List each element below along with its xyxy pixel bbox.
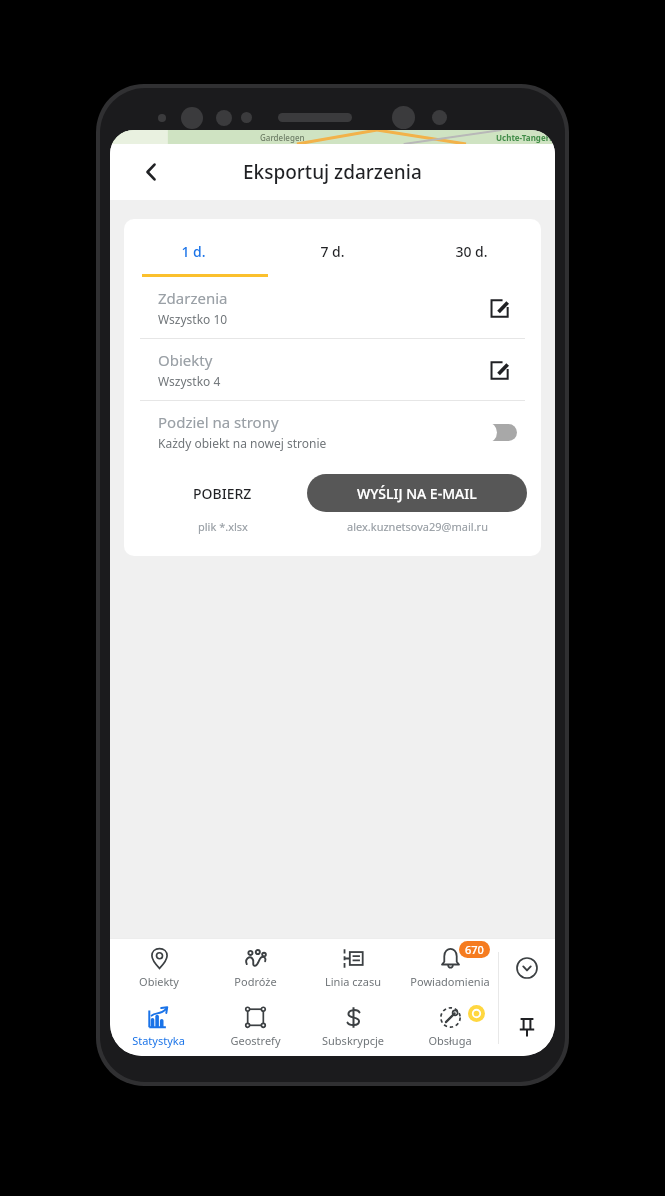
button[interactable]: Pin (499, 997, 555, 1056)
staticText: 30 d. (455, 242, 488, 261)
staticText: Obiekty (139, 974, 179, 989)
button[interactable]: Split pages toggle (471, 417, 517, 447)
button[interactable]: 670 (401, 939, 498, 997)
staticText: plik *.xlsx (198, 519, 248, 534)
staticText: 7 d. (320, 242, 345, 261)
staticText: Zdarzenia (158, 288, 228, 308)
staticText: alex.kuznetsova29@mail.ru (347, 519, 488, 534)
button[interactable]: Obsługa (401, 997, 498, 1056)
button[interactable]: Subskrypcje (304, 997, 401, 1056)
button[interactable]: Linia czasu (304, 939, 401, 997)
button[interactable]: Collapse (499, 939, 555, 997)
staticText: Eksportuj zdarzenia (243, 159, 422, 185)
staticText: Geostrefy (230, 1033, 281, 1048)
staticText: 670 (465, 942, 484, 957)
staticText: Obiekty (158, 350, 213, 370)
button[interactable]: Zdarzenia (124, 277, 541, 338)
staticText: Uchte-Tangerh (496, 132, 555, 143)
button[interactable]: POBIERZ (138, 474, 307, 534)
staticText: Powiadomienia (410, 974, 490, 989)
button[interactable]: 1 d. (124, 225, 263, 277)
button[interactable]: 7 d. (263, 225, 402, 277)
button[interactable]: Edit Zdarzenia (481, 290, 517, 326)
button[interactable]: WYŚLIJ NA E-MAIL (307, 474, 527, 534)
staticText: Wszystko 4 (158, 373, 221, 389)
button[interactable]: Obiekty (110, 939, 207, 997)
staticText: Podziel na strony (158, 412, 279, 432)
button[interactable]: Back (130, 151, 172, 193)
staticText: 1 d. (181, 242, 206, 261)
staticText: Podróże (234, 974, 277, 989)
button[interactable]: Podróże (207, 939, 304, 997)
staticText: Wszystko 10 (158, 311, 228, 327)
staticText: WYŚLIJ NA E-MAIL (357, 484, 477, 503)
staticText: POBIERZ (193, 484, 252, 503)
staticText: Subskrypcje (322, 1033, 384, 1048)
button[interactable]: Geostrefy (207, 997, 304, 1056)
button[interactable]: Edit Obiekty (481, 352, 517, 388)
staticText: Gardelegen (260, 132, 305, 143)
staticText: Linia czasu (325, 974, 381, 989)
button[interactable]: Obiekty (124, 339, 541, 400)
staticText: Każdy obiekt na nowej stronie (158, 435, 327, 451)
button[interactable]: 30 d. (402, 225, 541, 277)
button[interactable]: Podziel na strony (124, 401, 541, 462)
button[interactable]: Statystyka (110, 997, 207, 1056)
staticText: Statystyka (132, 1033, 185, 1048)
staticText: Obsługa (428, 1033, 472, 1048)
